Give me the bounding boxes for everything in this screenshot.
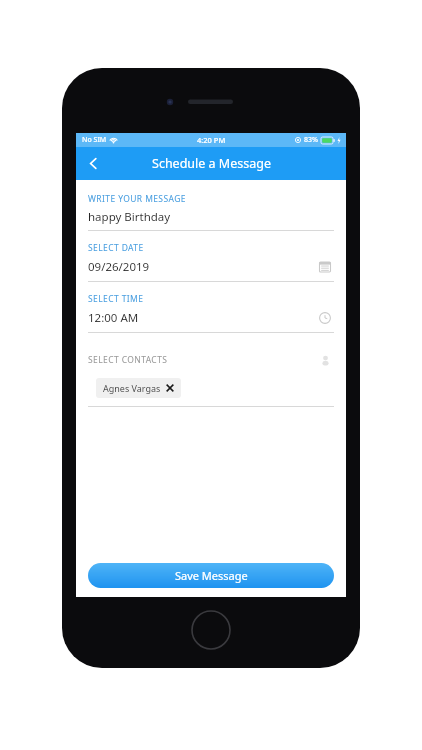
button[interactable]: Add contact [316,351,334,369]
staticText: Save Message [175,568,248,583]
button[interactable]: SELECT TIME [88,293,334,333]
button[interactable]: Back [76,147,110,180]
staticText: 09/26/2019 [88,259,316,275]
staticText: Agnes Vargas [103,382,161,394]
staticText: SELECT TIME [88,293,144,305]
staticText: 4:20 PM [197,135,226,145]
button[interactable]: WRITE YOUR MESSAGE [88,193,334,231]
button[interactable]: SELECT DATE [88,242,334,282]
staticText: happy Birthday [88,209,334,225]
staticText: WRITE YOUR MESSAGE [88,193,186,205]
button[interactable]: Save Message [88,563,334,588]
staticText: Schedule a Message [152,155,271,172]
staticText: 12:00 AM [88,310,316,326]
button[interactable]: Pick time [316,309,334,327]
button[interactable]: Pick date [316,258,334,276]
staticText: 83% [304,135,318,145]
staticText: No SIM [82,135,107,145]
staticText: SELECT CONTACTS [88,354,316,366]
button[interactable]: Agnes Vargas [96,378,181,398]
staticText: SELECT DATE [88,242,144,254]
